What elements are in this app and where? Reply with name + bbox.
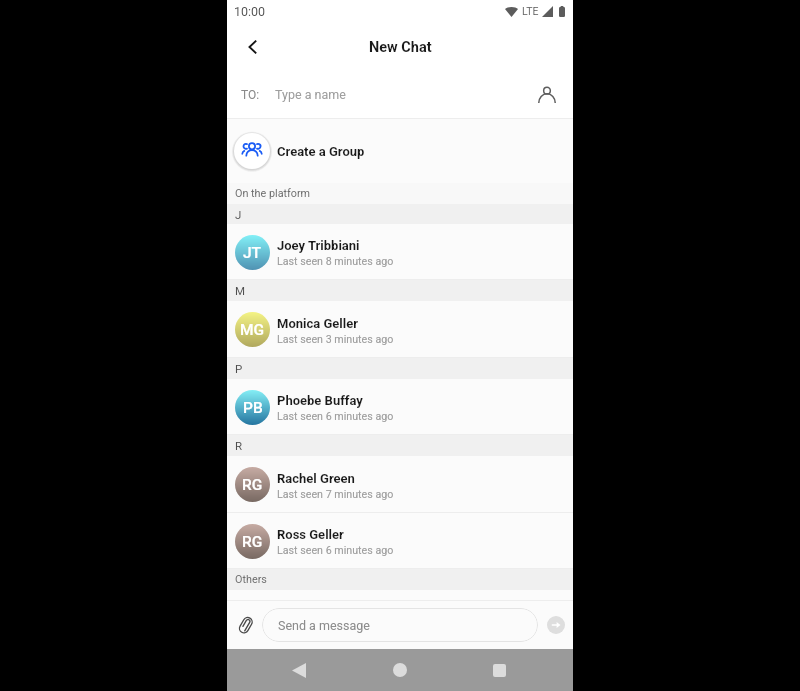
- staticText: RG: [242, 476, 263, 494]
- staticText: Others: [235, 573, 267, 586]
- staticText: M: [235, 284, 246, 297]
- staticText: On the platform: [235, 187, 311, 200]
- staticText: Monica Geller: [277, 316, 358, 331]
- button[interactable]: Add contact: [533, 81, 561, 109]
- button[interactable]: Attach file: [232, 611, 260, 639]
- button[interactable]: Back: [278, 649, 320, 691]
- staticText: LTE: [522, 5, 539, 17]
- staticText: Create a Group: [277, 144, 365, 159]
- staticText: 10:00: [234, 4, 266, 19]
- staticText: Rachel Green: [277, 471, 355, 486]
- staticText: Last seen 7 minutes ago: [277, 488, 394, 501]
- staticText: PB: [243, 399, 263, 417]
- staticText: R: [235, 439, 243, 452]
- button[interactable]: Create a Group: [227, 119, 573, 183]
- staticText: MG: [240, 321, 265, 339]
- button[interactable]: Recent apps: [478, 649, 520, 691]
- staticText: Joey Tribbiani: [277, 238, 360, 253]
- staticText: Phoebe Buffay: [277, 393, 363, 408]
- button[interactable]: RG: [227, 513, 573, 569]
- button[interactable]: Send a message: [262, 608, 538, 642]
- staticText: Last seen 8 minutes ago: [277, 255, 394, 268]
- staticText: J: [235, 208, 242, 221]
- button[interactable]: MG: [227, 301, 573, 358]
- staticText: RG: [242, 533, 263, 551]
- button[interactable]: PB: [227, 379, 573, 435]
- staticText: Type a name: [275, 87, 346, 102]
- button[interactable]: JT: [227, 224, 573, 280]
- staticText: Last seen 3 minutes ago: [277, 333, 394, 346]
- button[interactable]: Home: [379, 649, 421, 691]
- staticText: Last seen 6 minutes ago: [277, 410, 394, 423]
- staticText: Ross Geller: [277, 527, 344, 542]
- button[interactable]: Back: [235, 29, 271, 65]
- staticText: New Chat: [369, 39, 432, 56]
- staticText: P: [235, 362, 243, 375]
- button[interactable]: Send: [547, 616, 565, 634]
- staticText: TO:: [241, 88, 260, 102]
- staticText: Send a message: [278, 618, 370, 633]
- staticText: Last seen 6 minutes ago: [277, 544, 394, 557]
- staticText: JT: [243, 244, 262, 262]
- button[interactable]: RG: [227, 456, 573, 513]
